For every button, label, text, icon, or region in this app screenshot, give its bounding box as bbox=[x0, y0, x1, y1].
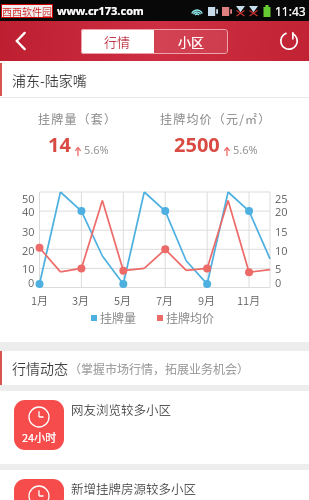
staticText: 5.6% bbox=[84, 142, 109, 157]
button[interactable]: 24小时 bbox=[0, 470, 309, 500]
staticText: 新增挂牌房源较多小区 bbox=[71, 479, 197, 497]
staticText: 3月 bbox=[72, 292, 90, 308]
staticText: 行情动态 bbox=[12, 358, 68, 378]
staticText: 西西软件园 bbox=[2, 4, 52, 18]
staticText: 0 bbox=[28, 275, 35, 290]
staticText: 30 bbox=[22, 224, 35, 239]
staticText: 24小时 bbox=[22, 429, 57, 445]
staticText: 20 bbox=[22, 243, 35, 258]
staticText: 20 bbox=[275, 204, 288, 219]
staticText: 11:43 bbox=[275, 3, 306, 19]
staticText: 10 bbox=[22, 261, 35, 276]
button[interactable]: 行情 bbox=[81, 29, 154, 54]
staticText: 50 bbox=[22, 191, 35, 206]
staticText: 7月 bbox=[156, 292, 174, 308]
staticText: 1月 bbox=[31, 292, 49, 308]
staticText: 40 bbox=[22, 204, 35, 219]
staticText: 浦东-陆家嘴 bbox=[12, 70, 87, 90]
button[interactable]: 小区 bbox=[154, 29, 228, 54]
staticText: 挂牌量 bbox=[100, 309, 137, 326]
staticText: 14 bbox=[48, 131, 71, 158]
staticText: 小区 bbox=[178, 32, 205, 51]
staticText: 网友浏览较多小区 bbox=[71, 400, 172, 418]
staticText: 挂牌量（套） bbox=[38, 110, 118, 127]
staticText: 挂牌均价（元/㎡） bbox=[160, 110, 272, 127]
staticText: 11月 bbox=[237, 292, 261, 308]
staticText: 9月 bbox=[198, 292, 216, 308]
staticText: 5月 bbox=[114, 292, 132, 308]
staticText: www.cr173.com bbox=[57, 3, 144, 18]
staticText: 25 bbox=[275, 191, 288, 206]
staticText: 15 bbox=[275, 224, 288, 239]
staticText: 5.6% bbox=[233, 142, 258, 157]
staticText: （掌握市场行情，拓展业务机会） bbox=[69, 360, 250, 377]
staticText: 0 bbox=[275, 275, 282, 290]
staticText: 5 bbox=[275, 261, 282, 276]
staticText: 行情 bbox=[104, 32, 131, 51]
staticText: 挂牌均价 bbox=[166, 309, 215, 326]
button[interactable]: 24小时 bbox=[0, 391, 309, 464]
button[interactable]: Refresh bbox=[269, 21, 309, 61]
button[interactable]: Back bbox=[0, 21, 40, 61]
staticText: 10 bbox=[275, 243, 288, 258]
staticText: 2500 bbox=[174, 131, 220, 158]
